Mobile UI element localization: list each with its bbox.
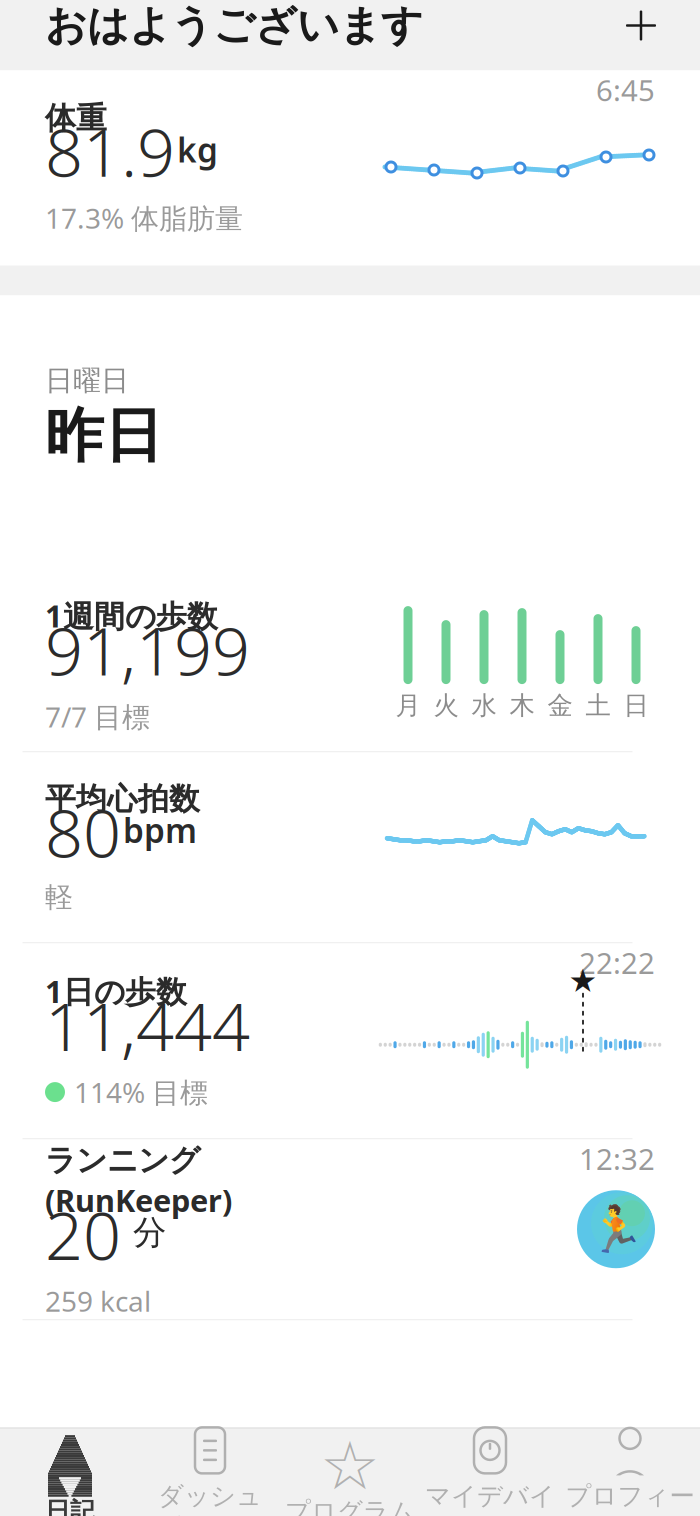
staticText: bpm: [123, 808, 197, 852]
staticText: 7/7 目標: [45, 698, 150, 735]
staticText: 木: [509, 690, 534, 721]
staticText: 91,199: [45, 605, 250, 694]
staticText: 月: [395, 690, 420, 721]
button[interactable]: [0, 752, 700, 942]
staticText: kg: [177, 127, 218, 172]
button[interactable]: 追加: [614, 0, 668, 52]
staticText: 🏃: [588, 1203, 644, 1255]
staticText: 1週間の歩数: [45, 595, 218, 636]
staticText: 日: [623, 690, 648, 721]
staticText: プロフィール: [565, 1480, 694, 1516]
staticText: ダッシュボード: [158, 1480, 262, 1516]
staticText: ランニング (RunKeeper): [45, 1139, 232, 1220]
button[interactable]: ☆: [280, 1431, 420, 1516]
staticText: 6:45: [596, 70, 655, 109]
staticText: 12:32: [579, 1139, 655, 1178]
staticText: 水: [471, 690, 496, 721]
staticText: 火: [433, 690, 458, 721]
staticText: 金: [547, 690, 572, 721]
staticText: ★: [568, 963, 597, 999]
button[interactable]: 12:32: [0, 1139, 700, 1319]
button[interactable]: プロフィール: [560, 1431, 700, 1516]
staticText: 17.3% 体脂肪量: [45, 199, 243, 236]
button[interactable]: 6:45: [0, 70, 700, 265]
staticText: 22:22: [579, 943, 655, 982]
button[interactable]: マイデバイス: [420, 1431, 560, 1516]
staticText: 114% 目標: [74, 1073, 208, 1111]
staticText: 81.9: [45, 107, 175, 195]
staticText: 分: [123, 1212, 166, 1253]
button[interactable]: [0, 579, 700, 751]
staticText: 11,444: [45, 981, 250, 1069]
staticText: ☆: [320, 1428, 380, 1504]
staticText: 20: [45, 1190, 121, 1278]
staticText: 軽: [45, 880, 73, 914]
staticText: おはようございます: [45, 0, 423, 51]
staticText: マイデバイス: [425, 1480, 555, 1516]
staticText: 1日の歩数: [45, 971, 187, 1011]
staticText: プログラム: [285, 1496, 415, 1516]
staticText: 日記: [45, 1496, 95, 1516]
button[interactable]: 22:22: [0, 943, 700, 1138]
staticText: 体重: [45, 100, 107, 137]
staticText: 259 kcal: [45, 1282, 151, 1320]
staticText: 土: [585, 690, 610, 721]
staticText: 80: [45, 787, 121, 876]
staticText: 平均心拍数: [45, 780, 200, 818]
staticText: 昨日: [45, 400, 163, 472]
button[interactable]: ダッシュボード: [140, 1431, 280, 1516]
staticText: 日曜日: [45, 363, 129, 398]
button[interactable]: 日記: [0, 1431, 140, 1516]
